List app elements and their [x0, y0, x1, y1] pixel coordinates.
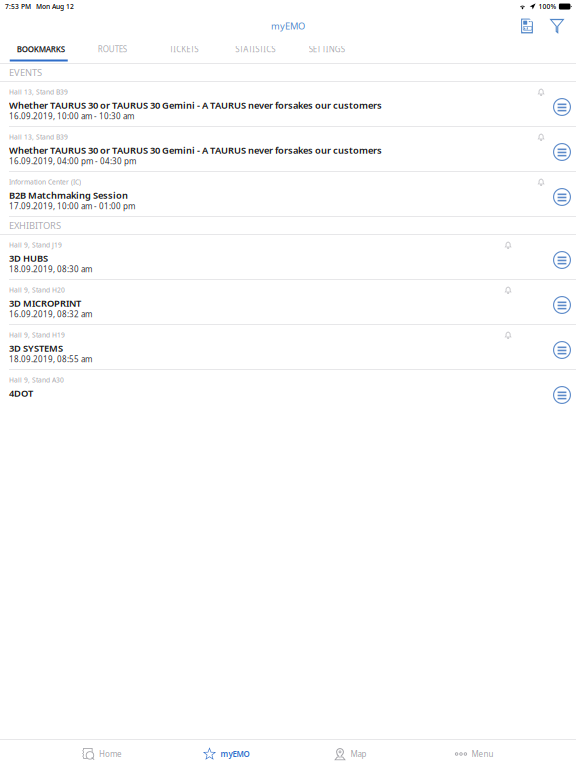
- staticText: Hall 9, Stand H19: [9, 330, 65, 339]
- staticText: Whether TAURUS 30 or TAURUS 30 Gemini - …: [9, 144, 382, 156]
- staticText: TICKETS: [169, 44, 198, 54]
- staticText: 18.09.2019, 08:55 am: [9, 354, 92, 364]
- staticText: 3D MICROPRINT: [9, 297, 81, 309]
- staticText: Mon Aug 12: [36, 2, 74, 11]
- staticText: 7:53 PM: [5, 2, 31, 11]
- staticText: 17.09.2019, 10:00 am - 01:00 pm: [9, 201, 135, 211]
- staticText: 100%: [538, 2, 556, 11]
- button[interactable]: SETTINGS: [291, 39, 362, 63]
- button[interactable]: Hall 9, Stand H19: [0, 325, 576, 370]
- staticText: ROUTES: [98, 44, 127, 54]
- staticText: myEMO: [220, 749, 249, 759]
- button[interactable]: BOOKMARKS: [5, 39, 76, 63]
- staticText: SETTINGS: [309, 44, 345, 54]
- button[interactable]: News: [512, 14, 542, 38]
- button[interactable]: Hall 9, Stand H20: [0, 280, 576, 325]
- staticText: B2B Matchmaking Session: [9, 189, 128, 201]
- button[interactable]: Home: [40, 740, 164, 768]
- staticText: EVENTS: [9, 66, 42, 79]
- button[interactable]: Map: [288, 740, 412, 768]
- button[interactable]: Filter: [542, 14, 572, 38]
- staticText: Information Center (IC): [9, 177, 81, 186]
- button[interactable]: STATISTICS: [219, 39, 291, 63]
- staticText: BOOKMARKS: [17, 44, 65, 54]
- staticText: 18.09.2019, 08:30 am: [9, 264, 92, 274]
- staticText: STATISTICS: [235, 44, 275, 54]
- staticText: 16.09.2019, 08:32 am: [9, 309, 92, 319]
- button[interactable]: Menu: [412, 740, 536, 768]
- staticText: Hall 13, Stand B39: [9, 132, 68, 141]
- staticText: 3D HUBS: [9, 252, 48, 264]
- staticText: Whether TAURUS 30 or TAURUS 30 Gemini - …: [9, 99, 382, 111]
- staticText: 16.09.2019, 10:00 am - 10:30 am: [9, 111, 134, 121]
- staticText: 3D SYSTEMS: [9, 342, 63, 354]
- staticText: Hall 13, Stand B39: [9, 87, 68, 96]
- button[interactable]: Hall 9, Stand A30: [0, 370, 576, 415]
- button[interactable]: Hall 13, Stand B39: [0, 127, 576, 172]
- button[interactable]: Hall 9, Stand J19: [0, 235, 576, 280]
- staticText: Map: [350, 749, 366, 759]
- button[interactable]: myEMO: [164, 740, 288, 768]
- staticText: Home: [99, 749, 122, 759]
- button[interactable]: TICKETS: [148, 39, 219, 63]
- staticText: Hall 9, Stand J19: [9, 240, 62, 249]
- staticText: EXHIBITORS: [9, 219, 61, 232]
- button[interactable]: Information Center (IC): [0, 172, 576, 217]
- staticText: Menu: [471, 749, 493, 759]
- button[interactable]: Hall 13, Stand B39: [0, 82, 576, 127]
- staticText: myEMO: [271, 20, 305, 32]
- button[interactable]: ROUTES: [76, 39, 148, 63]
- staticText: Hall 9, Stand H20: [9, 285, 65, 294]
- staticText: 16.09.2019, 04:00 pm - 04:30 pm: [9, 156, 136, 166]
- staticText: 4DOT: [9, 387, 33, 399]
- staticText: Hall 9, Stand A30: [9, 375, 64, 384]
